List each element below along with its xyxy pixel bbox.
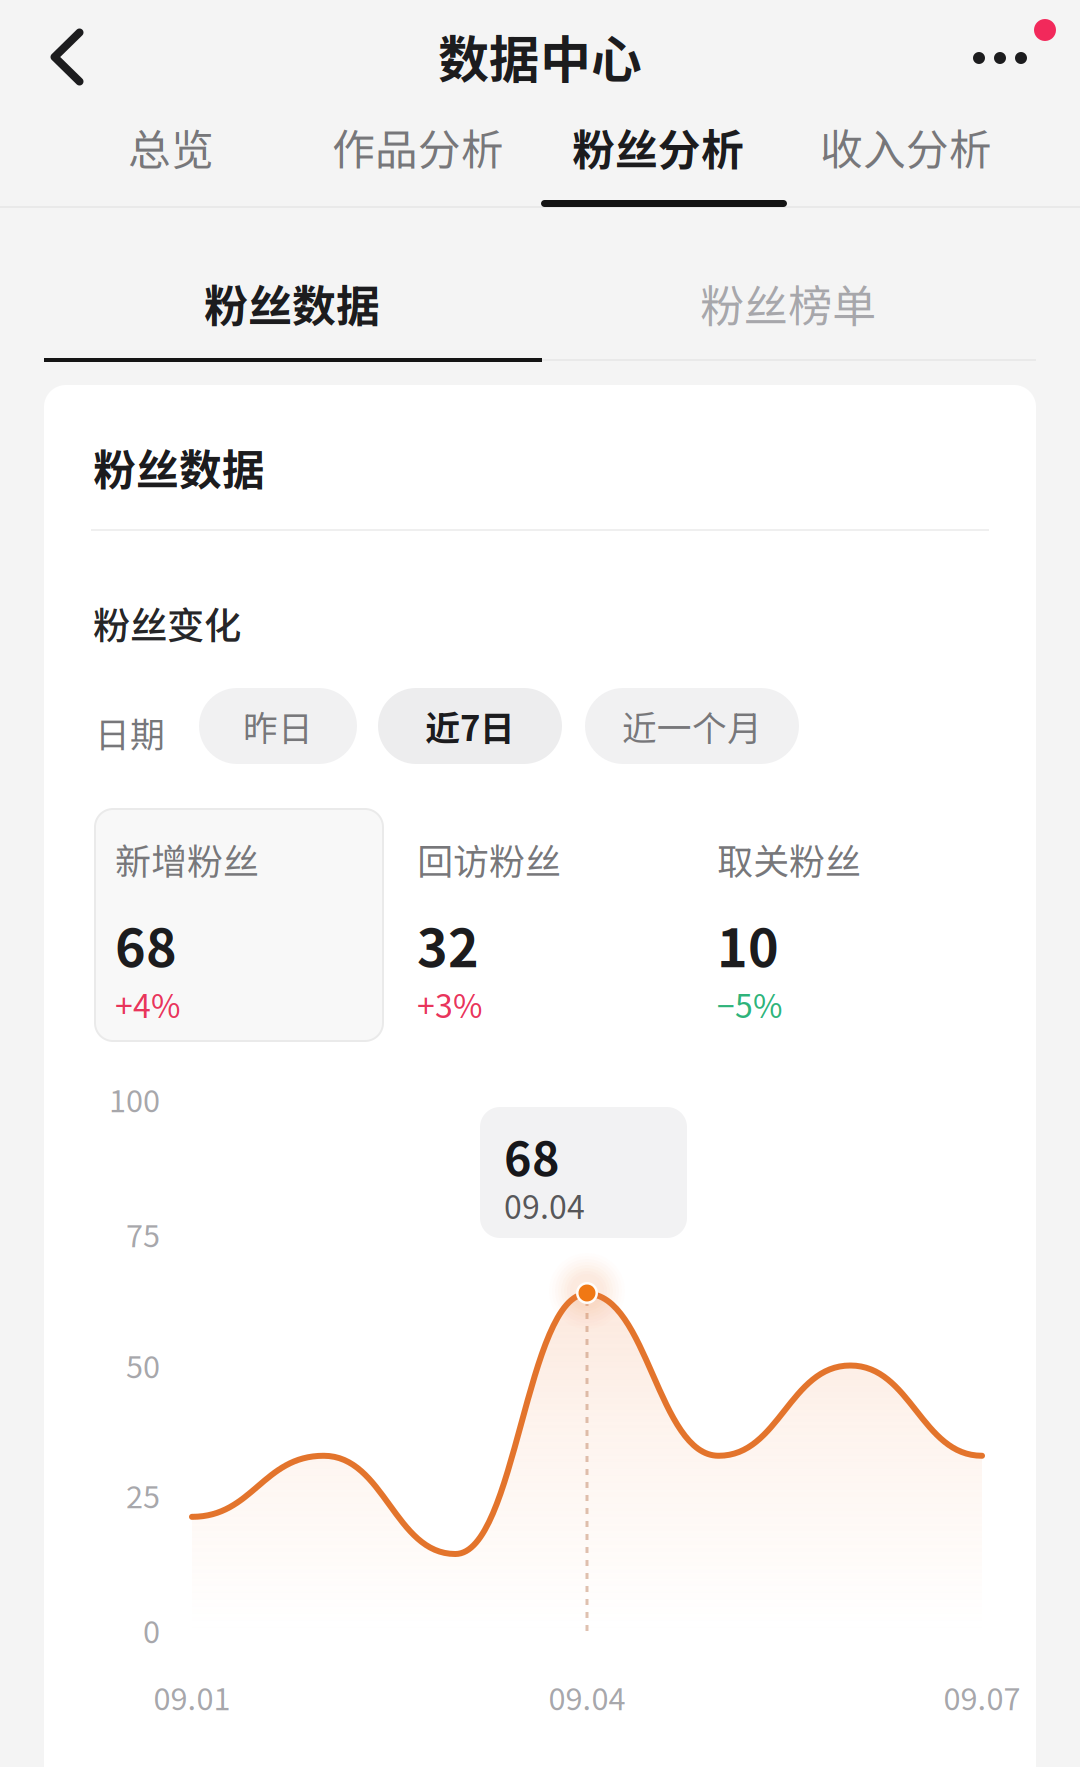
staticText: 100 xyxy=(109,1077,160,1121)
staticText: 32 xyxy=(417,907,479,982)
staticText: 粉丝变化 xyxy=(93,596,241,650)
staticText: 数据中心 xyxy=(438,19,642,93)
staticText: 近7日 xyxy=(425,701,515,751)
button[interactable]: 取关粉丝 xyxy=(717,833,1005,1041)
staticText: 收入分析 xyxy=(820,116,992,178)
staticText: 75 xyxy=(126,1212,160,1256)
staticText: 50 xyxy=(126,1343,160,1387)
staticText: 09.01 xyxy=(153,1675,230,1719)
button[interactable]: 近7日 xyxy=(378,688,562,764)
staticText: 10 xyxy=(717,907,779,982)
staticText: 粉丝分析 xyxy=(572,116,744,178)
staticText: 新增粉丝 xyxy=(115,833,259,885)
staticText: 粉丝数据 xyxy=(93,436,265,498)
staticText: 68 xyxy=(504,1122,560,1190)
button[interactable]: 粉丝榜单 xyxy=(540,252,1036,354)
button[interactable]: 新增粉丝 xyxy=(115,833,403,1041)
button[interactable]: 返回 xyxy=(12,14,122,100)
staticText: 25 xyxy=(126,1473,160,1517)
button[interactable]: 粉丝数据 xyxy=(44,252,540,354)
staticText: +4% xyxy=(115,981,180,1027)
staticText: 粉丝榜单 xyxy=(700,271,876,335)
button[interactable]: 总览 xyxy=(102,101,240,193)
button[interactable]: 更多 xyxy=(940,18,1060,98)
staticText: 68 xyxy=(115,907,177,982)
staticText: 总览 xyxy=(128,116,214,178)
staticText: +3% xyxy=(417,981,482,1027)
staticText: 昨日 xyxy=(243,701,313,751)
staticText: 作品分析 xyxy=(332,116,504,178)
button[interactable]: 粉丝分析 xyxy=(546,101,770,193)
staticText: 回访粉丝 xyxy=(417,833,561,885)
staticText: 09.07 xyxy=(943,1675,1020,1719)
button[interactable]: 近一个月 xyxy=(585,688,799,764)
staticText: 日期 xyxy=(95,707,165,757)
staticText: 09.04 xyxy=(504,1182,585,1228)
staticText: 粉丝数据 xyxy=(204,271,380,335)
button[interactable]: 回访粉丝 xyxy=(417,833,705,1041)
staticText: 09.04 xyxy=(548,1675,625,1719)
button[interactable]: 作品分析 xyxy=(306,101,530,193)
staticText: 0 xyxy=(143,1608,160,1652)
staticText: 近一个月 xyxy=(622,701,762,751)
staticText: −5% xyxy=(717,981,782,1027)
staticText: 取关粉丝 xyxy=(717,833,861,885)
button[interactable]: 收入分析 xyxy=(794,101,1018,193)
button[interactable]: 昨日 xyxy=(199,688,357,764)
